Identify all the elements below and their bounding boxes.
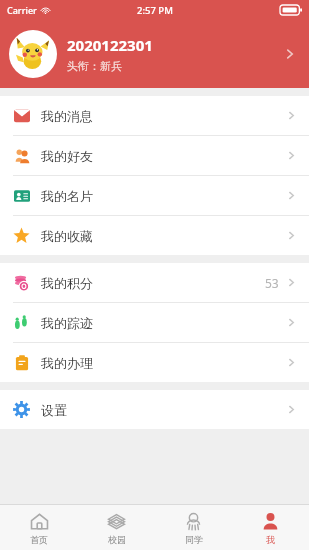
staticText: 设置 (41, 402, 67, 418)
staticText: 头衔：新兵 (67, 59, 122, 73)
button[interactable]: 同学 (155, 505, 232, 550)
staticText: 同学 (185, 534, 203, 545)
staticText: Carrier (7, 4, 37, 16)
staticText: 我 (266, 534, 275, 545)
staticText: 首页 (30, 534, 48, 545)
other: 首页 (30, 512, 49, 531)
staticText: 2020122301 (67, 35, 153, 55)
staticText: 我的好友 (41, 148, 93, 164)
staticText: 2:57 PM (137, 4, 173, 17)
staticText: 53 (265, 275, 279, 291)
button[interactable]: 我的积分 (0, 263, 309, 302)
button[interactable]: 我的好友 (0, 136, 309, 175)
staticText: 我的办理 (41, 355, 93, 371)
button[interactable]: 首页 (0, 505, 78, 550)
button[interactable]: 我的名片 (0, 176, 309, 215)
button[interactable]: 我 (232, 505, 309, 550)
other: 我 (261, 512, 280, 531)
other: 校园 (107, 512, 126, 531)
button[interactable]: 2020122301 (0, 20, 309, 88)
button[interactable]: 设置 (0, 390, 309, 429)
staticText: 我的踪迹 (41, 315, 93, 331)
button[interactable]: 我的办理 (0, 343, 309, 382)
staticText: 我的收藏 (41, 228, 93, 244)
staticText: 校园 (108, 534, 126, 545)
button[interactable]: 我的消息 (0, 96, 309, 135)
button[interactable]: 校园 (78, 505, 155, 550)
staticText: 我的积分 (41, 275, 93, 291)
staticText: 我的名片 (41, 188, 93, 204)
staticText: 我的消息 (41, 108, 93, 124)
button[interactable]: 我的踪迹 (0, 303, 309, 342)
button[interactable]: 我的收藏 (0, 216, 309, 255)
other: 同学 (184, 512, 203, 531)
